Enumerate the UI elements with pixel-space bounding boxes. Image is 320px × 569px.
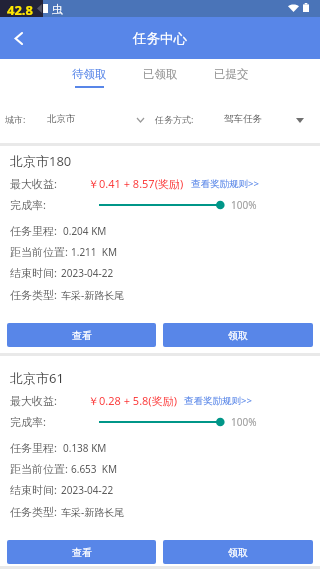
- staticText: 车采-新路长尾: [61, 288, 125, 302]
- staticText: 0.204 KM: [63, 224, 107, 238]
- staticText: 待领取: [72, 67, 107, 81]
- button[interactable]: 查看奖励规则>>: [184, 391, 252, 409]
- button[interactable]: 已领取: [125, 59, 196, 88]
- staticText: 领取: [228, 546, 248, 559]
- staticText: 车采-新路长尾: [61, 505, 125, 519]
- staticText: 查看: [72, 546, 92, 559]
- staticText: 北京市: [47, 113, 76, 125]
- staticText: 查看奖励规则>>: [191, 177, 259, 190]
- button[interactable]: 待领取: [54, 59, 125, 88]
- staticText: 42.8: [7, 1, 33, 18]
- button[interactable]: 领取: [163, 540, 313, 564]
- staticText: 最大收益:: [10, 176, 57, 191]
- staticText: 4:58: [12, 0, 30, 11]
- staticText: 距当前位置:: [10, 461, 68, 476]
- staticText: 城市:: [5, 113, 26, 125]
- staticText: 完成率:: [10, 414, 46, 429]
- staticText: 完成率:: [10, 197, 46, 212]
- staticText: 100%: [231, 415, 257, 429]
- staticText: 北京市61: [10, 369, 64, 387]
- button[interactable]: 领取: [163, 323, 313, 347]
- button[interactable]: 北京市: [45, 104, 147, 134]
- staticText: 100%: [231, 198, 257, 212]
- staticText: ￥0.41 + 8.57(奖励): [88, 176, 184, 191]
- button[interactable]: 驾车任务: [222, 104, 312, 134]
- staticText: 结束时间:: [10, 265, 57, 280]
- staticText: 已领取: [143, 67, 178, 81]
- staticText: 北京市180: [10, 152, 72, 170]
- staticText: 0.138 KM: [63, 441, 107, 455]
- staticText: 任务类型:: [10, 287, 57, 302]
- staticText: 虫: [52, 2, 63, 16]
- staticText: 驾车任务: [224, 113, 262, 125]
- staticText: 2023-04-22: [61, 483, 114, 497]
- button[interactable]: 查看: [7, 323, 156, 347]
- button[interactable]: 已提交: [196, 59, 267, 88]
- staticText: 查看奖励规则>>: [184, 394, 252, 407]
- staticText: ￥0.28 + 5.8(奖励): [88, 393, 177, 408]
- button[interactable]: 查看: [7, 540, 156, 564]
- staticText: 结束时间:: [10, 482, 57, 497]
- staticText: 最大收益:: [10, 393, 57, 408]
- staticText: 已提交: [214, 67, 249, 81]
- staticText: 任务里程:: [10, 223, 57, 238]
- staticText: 查看: [72, 329, 92, 342]
- staticText: 1.211 KM: [71, 245, 118, 259]
- staticText: 任务里程:: [10, 440, 57, 455]
- staticText: 6.653 KM: [71, 462, 118, 476]
- button[interactable]: 查看奖励规则>>: [191, 174, 259, 192]
- staticText: 任务类型:: [10, 504, 57, 519]
- staticText: 任务中心: [133, 30, 187, 47]
- staticText: 领取: [228, 329, 248, 342]
- staticText: 任务方式:: [155, 113, 194, 125]
- button[interactable]: Back: [0, 17, 35, 59]
- staticText: 距当前位置:: [10, 244, 68, 259]
- staticText: 2023-04-22: [61, 266, 114, 280]
